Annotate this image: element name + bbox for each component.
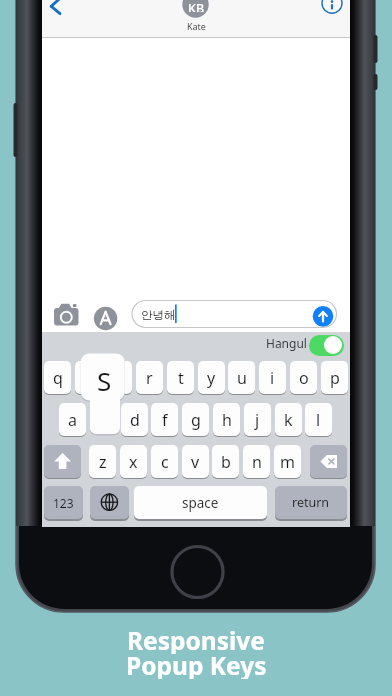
button[interactable]: x [120,445,147,478]
staticText: d [130,409,140,431]
staticText: Popup Keys [126,649,267,679]
staticText: k [284,409,293,431]
button[interactable] [172,547,223,598]
button[interactable]: o [290,361,317,394]
staticText: y [207,367,216,389]
button[interactable]: m [274,445,301,478]
button[interactable]: g [182,403,209,436]
staticText: Responsive [127,624,265,654]
button[interactable]: p [321,361,348,394]
staticText: f [162,409,168,431]
button[interactable]: i [259,361,286,394]
staticText: Kate [187,20,206,32]
staticText: m [280,451,295,473]
button[interactable] [42,0,350,38]
staticText: c [161,451,169,473]
staticText: space [182,494,219,512]
button[interactable]: return [275,486,347,519]
button[interactable]: w [75,361,102,394]
button[interactable] [320,0,344,16]
staticText: g [191,409,201,431]
button[interactable] [182,0,210,31]
staticText: S [97,363,112,398]
staticText: Hangul [266,335,307,351]
staticText: o [299,367,309,389]
button[interactable]: k [275,403,302,436]
staticText: l [316,409,321,431]
button[interactable] [93,306,118,331]
button[interactable] [44,0,68,18]
button[interactable]: space [134,486,267,519]
button[interactable]: z [89,445,116,478]
button[interactable]: 123 [44,486,83,519]
staticText: q [53,367,63,389]
button[interactable] [50,301,82,327]
button[interactable]: e [105,361,132,394]
button[interactable]: d [121,403,148,436]
button[interactable]: y [198,361,225,394]
staticText: r [146,367,153,389]
staticText: n [252,451,262,473]
button[interactable]: a [59,403,86,436]
button[interactable]: c [151,445,178,478]
button[interactable] [309,335,344,356]
staticText: KB [188,0,205,12]
button[interactable]: v [182,445,209,478]
staticText: u [237,367,247,389]
button[interactable]: l [305,403,332,436]
staticText: z [99,451,107,473]
staticText: h [222,409,232,431]
staticText: return [292,494,330,511]
button[interactable]: h [213,403,240,436]
button[interactable] [313,306,334,327]
button[interactable]: q [44,361,71,394]
button[interactable] [310,445,347,478]
staticText: i [270,367,275,389]
staticText: 안녕해 [141,308,176,322]
button[interactable]: j [244,403,271,436]
staticText: a [68,409,77,431]
button[interactable] [132,301,337,328]
staticText: v [191,451,200,473]
staticText: x [129,451,138,473]
button[interactable]: r [136,361,163,394]
button[interactable]: f [151,403,178,436]
staticText: 123 [53,495,74,511]
staticText: b [221,451,231,473]
button[interactable] [44,445,81,478]
button[interactable]: t [167,361,194,394]
staticText: j [255,409,260,431]
button[interactable] [90,486,129,519]
button[interactable]: b [212,445,239,478]
button[interactable]: u [228,361,255,394]
button[interactable]: n [243,445,270,478]
staticText: t [178,367,184,389]
staticText: p [330,367,340,389]
